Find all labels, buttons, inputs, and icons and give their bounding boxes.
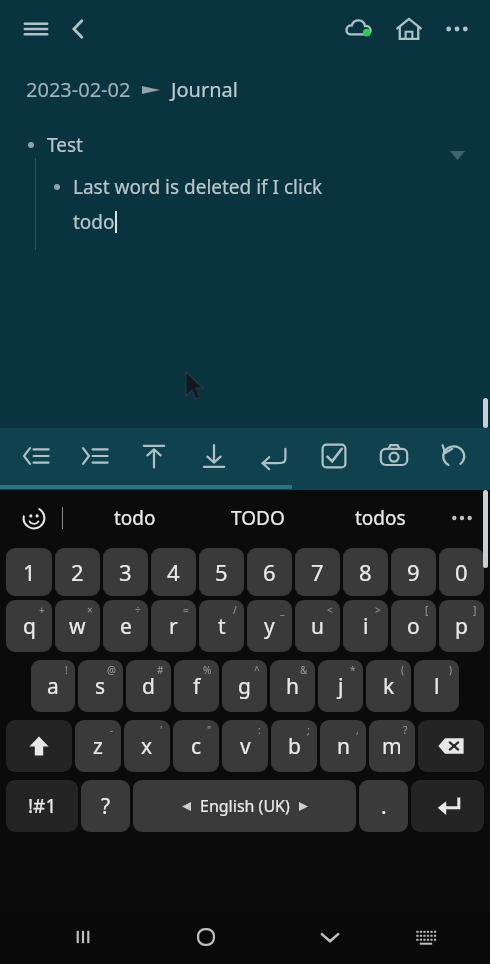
staticText: , (356, 723, 359, 737)
staticText: !#1 (28, 793, 57, 819)
button[interactable]: Hide keyboard (290, 910, 370, 964)
button[interactable]: Camera (364, 428, 424, 484)
staticText: Last word is deleted if I click (73, 174, 323, 200)
staticText: c (191, 732, 202, 761)
button[interactable]: t (199, 600, 244, 652)
button[interactable]: k (366, 660, 411, 712)
button[interactable]: English (UK) (133, 780, 356, 832)
button[interactable]: Last word is deleted if I click (54, 174, 323, 235)
button[interactable]: b (271, 720, 317, 772)
button[interactable]: 4 (151, 548, 196, 596)
button[interactable]: 2 (55, 548, 100, 596)
button[interactable]: 6 (247, 548, 292, 596)
button[interactable]: r (151, 600, 196, 652)
button[interactable]: h (270, 660, 315, 712)
button[interactable]: Emoji (12, 496, 56, 540)
button[interactable]: Undo (424, 428, 484, 484)
button[interactable]: Keyboard layout (386, 910, 466, 964)
staticText: q (23, 612, 36, 641)
button[interactable]: 7 (295, 548, 340, 596)
button[interactable]: c (173, 720, 219, 772)
button[interactable]: Backspace (418, 720, 484, 772)
button[interactable]: Checkbox (304, 428, 364, 484)
button[interactable]: Enter (411, 780, 484, 832)
button[interactable]: n (320, 720, 366, 772)
staticText: ' (160, 723, 163, 737)
staticText: % (203, 663, 212, 677)
button[interactable]: todo (74, 490, 196, 546)
button[interactable]: . (359, 780, 408, 832)
button[interactable]: 8 (343, 548, 388, 596)
button[interactable]: Shift (6, 720, 72, 772)
button[interactable]: 5 (199, 548, 244, 596)
staticText: " (207, 723, 212, 737)
button[interactable]: Menu (14, 7, 58, 51)
button[interactable]: u (295, 600, 340, 652)
staticText: ? (101, 792, 111, 821)
staticText: todos (355, 505, 406, 531)
button[interactable]: 1 (6, 548, 52, 596)
button[interactable]: Move up (124, 428, 184, 484)
button[interactable]: Outdent (6, 428, 65, 484)
button[interactable]: w (55, 600, 100, 652)
staticText: p (455, 612, 468, 641)
button[interactable]: Back (56, 7, 100, 51)
button[interactable]: i (343, 600, 388, 652)
button[interactable]: l (414, 660, 459, 712)
button[interactable]: Test (28, 132, 83, 158)
staticText: Journal (171, 76, 238, 103)
button[interactable]: f (174, 660, 219, 712)
button[interactable]: m (369, 720, 415, 772)
button[interactable]: Recents (43, 910, 122, 964)
button[interactable]: !#1 (6, 780, 78, 832)
button[interactable]: a (31, 660, 75, 712)
button[interactable]: j (318, 660, 363, 712)
button[interactable]: New line (244, 428, 304, 484)
button[interactable]: d (126, 660, 171, 712)
staticText: r (169, 612, 178, 641)
button[interactable]: 0 (439, 548, 484, 596)
staticText: k (383, 672, 395, 701)
button[interactable]: todos (319, 490, 442, 546)
button[interactable]: More options (434, 6, 480, 52)
button[interactable]: z (75, 720, 121, 772)
button[interactable]: Home (386, 6, 432, 52)
staticText: f (193, 672, 201, 701)
button[interactable]: e (103, 600, 148, 652)
button[interactable]: Home (166, 910, 246, 964)
staticText: ; (307, 723, 310, 737)
button[interactable]: TODO (196, 490, 319, 546)
button[interactable]: Indent (65, 428, 124, 484)
button[interactable]: q (6, 600, 52, 652)
staticText: i (363, 612, 369, 641)
button[interactable]: y (247, 600, 292, 652)
button[interactable]: o (391, 600, 436, 652)
staticText: 0 (455, 557, 468, 587)
staticText: × (87, 603, 93, 617)
staticText: t (218, 612, 226, 641)
staticText: < (327, 603, 333, 617)
staticText: 2023-02-02 (26, 76, 131, 103)
staticText: & (300, 663, 308, 677)
button[interactable]: g (222, 660, 267, 712)
button[interactable]: 9 (391, 548, 436, 596)
button[interactable]: 3 (103, 548, 148, 596)
staticText: e (120, 612, 132, 641)
button[interactable]: More suggestions (440, 496, 484, 540)
staticText: l (434, 672, 440, 701)
button[interactable]: ? (81, 780, 130, 832)
button[interactable]: v (222, 720, 268, 772)
button[interactable]: s (78, 660, 123, 712)
button[interactable]: 2023-02-02 (26, 76, 238, 103)
staticText: 1 (23, 557, 36, 587)
staticText: d (142, 672, 155, 701)
button[interactable]: Sync (336, 6, 382, 52)
staticText: ! (65, 663, 68, 677)
button[interactable]: Move down (184, 428, 244, 484)
button[interactable]: Collapse (446, 144, 468, 166)
staticText: 7 (311, 557, 324, 587)
staticText: @ (107, 663, 116, 677)
button[interactable]: p (439, 600, 484, 652)
button[interactable]: x (124, 720, 170, 772)
staticText: w (69, 612, 86, 641)
